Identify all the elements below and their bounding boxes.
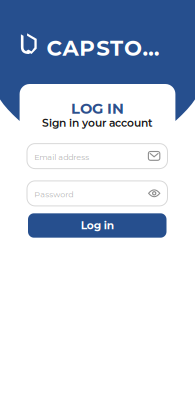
button[interactable]: Password xyxy=(27,181,167,206)
button[interactable]: Log in xyxy=(28,213,166,238)
staticText: Email address xyxy=(34,152,89,162)
staticText: CAPSTONE xyxy=(46,35,175,61)
button[interactable]: Email address xyxy=(27,144,167,169)
staticText: LOG IN xyxy=(71,99,124,117)
staticText: Sign in your account xyxy=(42,116,153,129)
staticText: Password xyxy=(34,189,73,199)
staticText: Log in xyxy=(81,219,114,232)
